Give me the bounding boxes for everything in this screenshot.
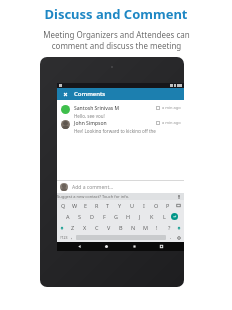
button[interactable]: Settings [174,233,183,242]
staticText: W [72,202,78,209]
button[interactable]: Y [114,200,126,211]
button[interactable]: . [167,233,174,242]
staticText: Q [61,202,66,209]
button[interactable]: Recents [130,242,139,251]
button[interactable]: ?123 [59,233,68,242]
staticText: R [95,202,99,209]
button[interactable]: W [69,200,80,211]
staticText: Y [118,202,122,209]
staticText: . [170,234,172,241]
button[interactable]: Add a comment... [57,181,184,193]
staticText: V [107,224,111,231]
staticText: O [154,202,159,209]
button[interactable]: R [91,200,102,211]
button[interactable]: N [127,222,139,233]
staticText: L [163,213,166,220]
button[interactable]: F [98,211,110,222]
button[interactable]: S [74,211,86,222]
button[interactable]: Shift [58,222,66,233]
staticText: Z [71,224,75,231]
staticText: ?123 [60,235,68,240]
button[interactable]: ? [163,222,175,233]
staticText: ? [168,224,171,231]
staticText: Hey! Looking forward to kicking off the … [74,128,156,133]
staticText: F [103,213,106,220]
button[interactable]: L [158,211,170,222]
button[interactable]: O [150,200,162,211]
staticText: ! [156,224,158,231]
staticText: P [166,202,170,209]
staticText: Meeting Organizers and Attendees can com… [43,29,190,51]
staticText: T [106,202,110,209]
staticText: Hello, see you! [74,113,105,118]
staticText: Suggest a new contact? Touch for info. [57,194,130,199]
button[interactable]: G [110,211,122,222]
staticText: John Simpson [74,120,107,127]
button[interactable]: Voice input [177,195,181,199]
button[interactable]: P [162,200,174,211]
staticText: Comments [74,90,106,98]
button[interactable]: Enter [170,211,179,222]
staticText: Add a comment... [72,184,114,191]
staticText: a min ago [162,120,181,125]
button[interactable]: Delete [174,200,183,211]
staticText: H [126,213,131,220]
button[interactable]: Close [57,88,184,100]
staticText: K [150,213,154,220]
staticText: M [143,224,148,231]
staticText: D [90,213,95,220]
button[interactable]: B [115,222,127,233]
button[interactable]: Q [58,200,69,211]
button[interactable]: Home [102,242,111,251]
button[interactable]: E [80,200,91,211]
staticText: J [139,213,141,220]
staticText: G [114,213,119,220]
staticText: N [131,224,136,231]
button[interactable]: A [62,211,74,222]
staticText: , [71,234,73,241]
other: Close [62,91,69,98]
button[interactable]: J [134,211,146,222]
button[interactable]: Z [66,222,79,233]
staticText: Santosh Srinivas M [74,105,120,112]
button[interactable]: H [122,211,134,222]
staticText: B [119,224,123,231]
button[interactable]: D [86,211,98,222]
staticText: S [78,213,82,220]
staticText: U [130,202,135,209]
button[interactable]: ! [151,222,163,233]
button[interactable]: K [146,211,158,222]
staticText: Discuss and Comment [44,5,188,23]
button[interactable]: X [79,222,91,233]
button[interactable]: Santosh Srinivas M [57,103,184,118]
button[interactable]: M [139,222,151,233]
button[interactable]: U [126,200,138,211]
button[interactable]: John Simpson [57,118,184,133]
staticText: C [95,224,99,231]
button[interactable]: C [91,222,103,233]
button[interactable]: T [102,200,114,211]
button[interactable]: Shift [175,222,183,233]
button[interactable]: Screenshot [157,242,166,251]
button[interactable]: , [68,233,75,242]
staticText: A [66,213,70,220]
button[interactable]: V [103,222,115,233]
staticText: I [143,202,145,209]
button[interactable]: I [138,200,150,211]
staticText: a min ago [162,105,181,110]
staticText: E [84,202,88,209]
button[interactable]: Back [75,242,84,251]
staticText: X [83,224,87,231]
